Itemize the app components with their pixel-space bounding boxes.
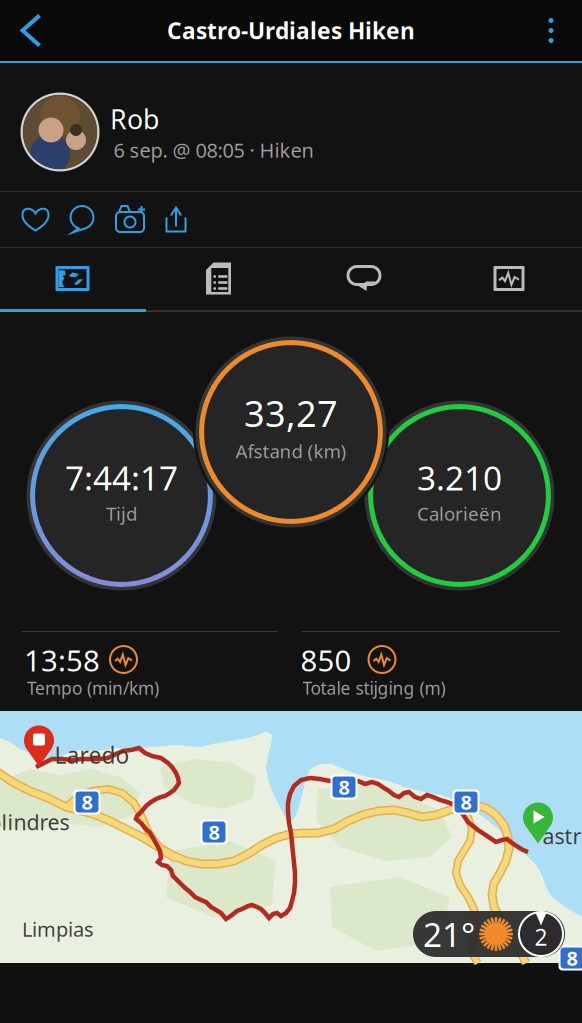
staticText: 8 <box>460 789 471 815</box>
staticText: 8 <box>208 819 219 845</box>
staticText: Laredo <box>54 740 129 770</box>
staticText: 6 sep. @ 08:05 · Hiken <box>113 137 313 163</box>
button[interactable]: Graphs <box>436 248 581 309</box>
button[interactable]: Comment <box>58 192 105 247</box>
staticText: Totale stijging (m) <box>302 676 445 699</box>
button[interactable]: Laps <box>291 248 436 309</box>
staticText: 8 <box>81 789 92 815</box>
staticText: 8 <box>566 945 577 971</box>
staticText: astr <box>542 822 581 850</box>
staticText: 850 <box>300 640 351 679</box>
button[interactable]: Add photo <box>106 192 153 247</box>
button[interactable]: More options <box>520 0 582 61</box>
button[interactable]: Back <box>0 0 62 61</box>
button[interactable]: Rob <box>0 63 582 191</box>
staticText: Calorieën <box>417 501 502 526</box>
staticText: 33,27 <box>244 389 338 437</box>
staticText: Rob <box>110 101 159 137</box>
button[interactable]: Details <box>146 248 291 309</box>
staticText: 13:58 <box>24 640 100 679</box>
staticText: 3.210 <box>417 455 502 500</box>
staticText: Limpias <box>22 916 94 942</box>
staticText: 2 <box>534 922 547 952</box>
staticText: 8 <box>338 774 349 800</box>
button[interactable]: Map <box>0 248 145 309</box>
button[interactable]: Share <box>152 192 199 247</box>
staticText: olindres <box>0 808 69 836</box>
staticText: 21° <box>423 912 475 956</box>
staticText: Castro-Urdiales Hiken <box>167 15 415 45</box>
staticText: 7:44:17 <box>65 455 178 500</box>
staticText: Afstand (km) <box>235 439 346 463</box>
button[interactable]: Like <box>12 192 59 247</box>
staticText: Tijd <box>106 501 137 526</box>
staticText: Tempo (min/km) <box>27 676 159 699</box>
